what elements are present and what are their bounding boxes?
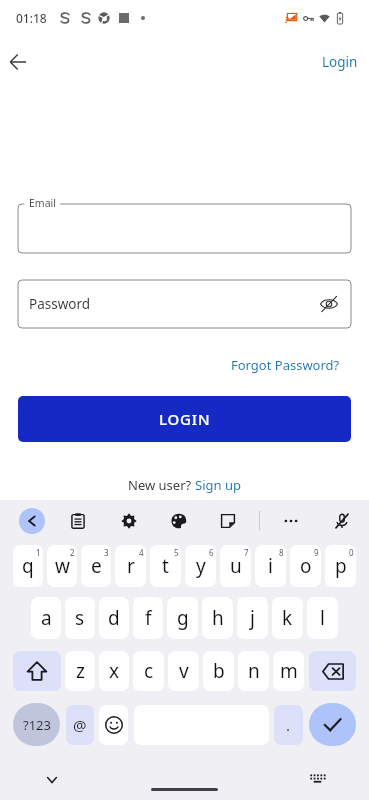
- staticText: 5: [174, 547, 179, 558]
- staticText: r: [127, 553, 135, 579]
- button[interactable]: x: [99, 651, 129, 691]
- staticText: 4: [139, 547, 144, 558]
- staticText: b: [213, 658, 225, 684]
- staticText: z: [76, 658, 85, 684]
- button[interactable]: h: [202, 597, 233, 639]
- staticText: f: [145, 605, 152, 631]
- staticText: o: [300, 553, 312, 579]
- staticText: x: [109, 658, 120, 684]
- button[interactable]: Forgot Password?: [229, 355, 342, 375]
- staticText: 9: [314, 547, 319, 558]
- staticText: 2: [70, 547, 75, 558]
- staticText: a: [41, 605, 52, 631]
- button[interactable]: Login: [316, 48, 364, 76]
- button[interactable]: y: [185, 545, 216, 587]
- button[interactable]: Settings: [116, 508, 142, 534]
- button[interactable]: f: [133, 597, 163, 639]
- button[interactable]: Back: [1, 45, 35, 79]
- staticText: @: [73, 715, 87, 735]
- staticText: c: [144, 658, 154, 684]
- button[interactable]: Hide keyboard: [39, 767, 65, 793]
- staticText: Forgot Password?: [231, 356, 340, 374]
- button[interactable]: t: [150, 545, 181, 587]
- staticText: 3: [104, 547, 109, 558]
- button[interactable]: Backspace: [309, 651, 356, 691]
- staticText: Sign up: [195, 476, 241, 494]
- button[interactable]: Clipboard: [65, 508, 91, 534]
- button[interactable]: s: [65, 597, 95, 639]
- staticText: Login: [322, 53, 358, 71]
- staticText: LOGIN: [159, 409, 211, 429]
- button[interactable]: p: [325, 545, 356, 587]
- button[interactable]: Show password: [313, 288, 345, 320]
- button[interactable]: c: [133, 651, 164, 691]
- button[interactable]: Enter: [309, 703, 356, 746]
- staticText: m: [280, 658, 298, 684]
- staticText: n: [248, 658, 260, 684]
- button[interactable]: Emoji: [99, 705, 128, 745]
- staticText: Password: [29, 295, 91, 313]
- button[interactable]: i: [255, 545, 286, 587]
- button[interactable]: w: [47, 545, 77, 587]
- button[interactable]: q: [13, 545, 43, 587]
- button[interactable]: Shift: [13, 651, 61, 691]
- staticText: q: [22, 553, 34, 579]
- staticText: t: [162, 553, 169, 579]
- button[interactable]: Sticker: [215, 508, 241, 534]
- button[interactable]: r: [115, 545, 146, 587]
- button[interactable]: Sign up: [195, 476, 241, 494]
- staticText: k: [282, 605, 293, 631]
- staticText: j: [250, 605, 255, 631]
- button[interactable]: n: [238, 651, 269, 691]
- button[interactable]: @: [66, 705, 94, 745]
- button[interactable]: Switch keyboard: [304, 765, 330, 791]
- button[interactable]: g: [167, 597, 198, 639]
- button[interactable]: o: [290, 545, 321, 587]
- staticText: s: [75, 605, 85, 631]
- staticText: 6: [209, 547, 214, 558]
- staticText: p: [335, 553, 347, 579]
- button[interactable]: .: [274, 705, 303, 745]
- button[interactable]: Theme: [166, 508, 192, 534]
- staticText: 01:18: [16, 10, 47, 26]
- staticText: u: [230, 553, 242, 579]
- button[interactable]: z: [65, 651, 95, 691]
- staticText: e: [91, 553, 102, 579]
- staticText: g: [177, 605, 189, 631]
- staticText: 0: [349, 547, 354, 558]
- staticText: v: [179, 658, 189, 684]
- staticText: 8: [279, 547, 284, 558]
- staticText: w: [55, 553, 70, 579]
- button[interactable]: d: [99, 597, 129, 639]
- staticText: 1: [36, 547, 41, 558]
- button[interactable]: u: [220, 545, 251, 587]
- staticText: 7: [244, 547, 249, 558]
- button[interactable]: v: [168, 651, 199, 691]
- staticText: Email: [29, 196, 56, 210]
- button[interactable]: k: [272, 597, 303, 639]
- staticText: i: [268, 553, 273, 579]
- button[interactable]: b: [203, 651, 234, 691]
- button[interactable]: l: [307, 597, 338, 639]
- button[interactable]: j: [237, 597, 268, 639]
- staticText: New user?: [128, 476, 195, 494]
- button[interactable]: Previous: [19, 508, 45, 534]
- button[interactable]: More: [278, 508, 304, 534]
- staticText: l: [320, 605, 325, 631]
- staticText: ?123: [23, 716, 51, 734]
- button[interactable]: e: [81, 545, 111, 587]
- button[interactable]: m: [273, 651, 304, 691]
- button[interactable]: Mute microphone: [329, 508, 355, 534]
- staticText: d: [108, 605, 120, 631]
- staticText: h: [212, 605, 224, 631]
- staticText: y: [196, 553, 206, 579]
- button[interactable]: a: [31, 597, 61, 639]
- button[interactable]: ?123: [13, 703, 60, 746]
- button[interactable]: LOGIN: [18, 396, 351, 442]
- staticText: .: [286, 715, 291, 735]
